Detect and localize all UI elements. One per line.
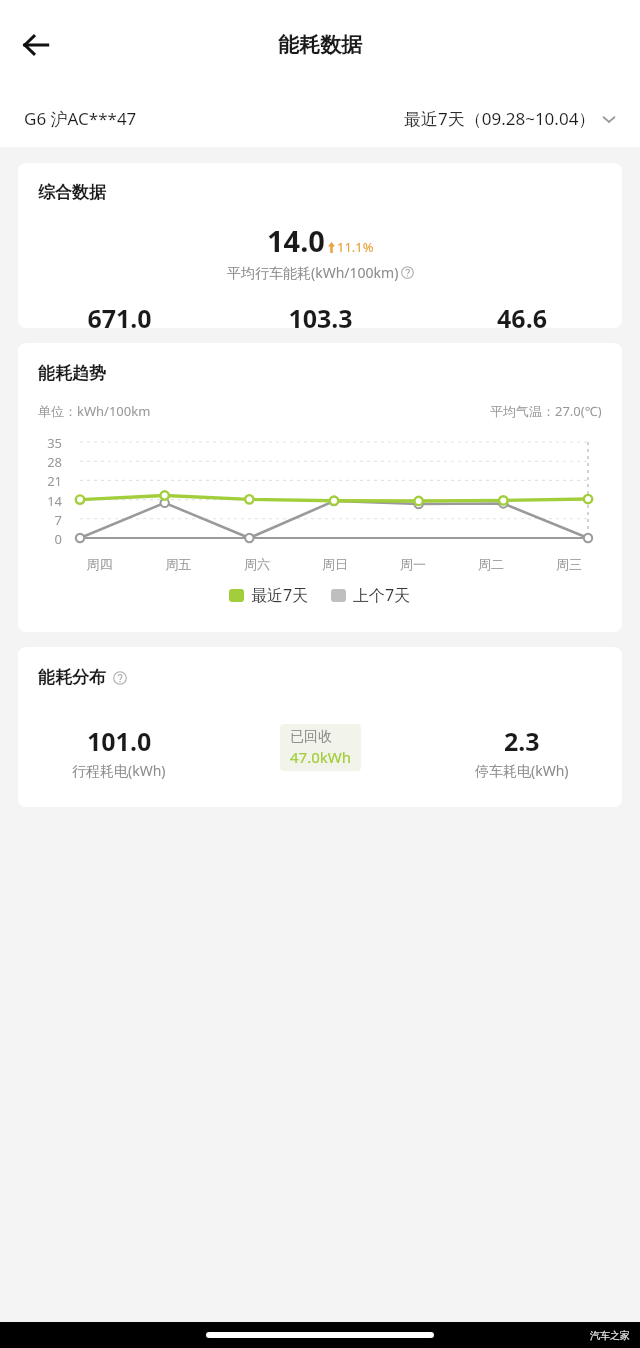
staticText: 能耗趋势 — [38, 363, 106, 384]
button[interactable]: 最近7天（09.28~10.04） — [404, 107, 618, 130]
staticText: 周三 — [530, 556, 608, 572]
staticText: 周四 — [60, 556, 139, 572]
staticText: 最近7天 — [251, 584, 309, 606]
staticText: 28 — [36, 453, 62, 471]
button[interactable]: 最近7天 — [229, 584, 309, 606]
staticText: 671.0 — [87, 301, 152, 328]
button[interactable]: 2.3 — [421, 724, 622, 780]
button[interactable]: 103.3 — [220, 301, 421, 328]
staticText: 46.6 — [497, 301, 547, 328]
staticText: 平均气温：27.0(℃) — [490, 402, 602, 420]
staticText: 上个7天 — [353, 584, 411, 606]
staticText: 周日 — [296, 556, 374, 572]
staticText: 周五 — [139, 556, 218, 572]
staticText: 平均行车能耗(kWh/100km) — [227, 263, 399, 282]
button[interactable]: 101.0 — [18, 724, 220, 780]
staticText: 能耗分布 — [38, 667, 106, 688]
staticText: 14.0 — [267, 221, 325, 260]
staticText: 已回收 — [290, 728, 332, 746]
button[interactable]: G6 沪AC***47 — [24, 107, 137, 130]
button[interactable]: Back — [10, 19, 62, 71]
staticText: 周六 — [218, 556, 296, 572]
button[interactable]: 671.0 — [18, 301, 220, 328]
staticText: 周二 — [452, 556, 530, 572]
staticText: 汽车之家 — [590, 1329, 630, 1342]
staticText: 103.3 — [288, 301, 353, 328]
staticText: 101.0 — [87, 724, 152, 758]
staticText: 综合数据 — [38, 182, 106, 203]
staticText: 11.1% — [337, 238, 374, 256]
staticText: 能耗数据 — [278, 32, 362, 58]
button[interactable]: 46.6 — [421, 301, 622, 328]
staticText: 单位：kWh/100km — [38, 402, 151, 420]
staticText: 0 — [36, 530, 62, 548]
staticText: 周一 — [374, 556, 452, 572]
staticText: 35 — [36, 434, 62, 452]
staticText: 停车耗电(kWh) — [475, 761, 569, 780]
staticText: 14 — [36, 492, 62, 510]
staticText: 行程耗电(kWh) — [72, 761, 166, 780]
staticText: 7 — [36, 511, 62, 529]
staticText: 47.0kWh — [290, 747, 351, 767]
button[interactable]: 上个7天 — [331, 584, 411, 606]
staticText: 21 — [36, 472, 62, 490]
staticText: 最近7天（09.28~10.04） — [404, 107, 596, 130]
staticText: 2.3 — [504, 724, 540, 758]
